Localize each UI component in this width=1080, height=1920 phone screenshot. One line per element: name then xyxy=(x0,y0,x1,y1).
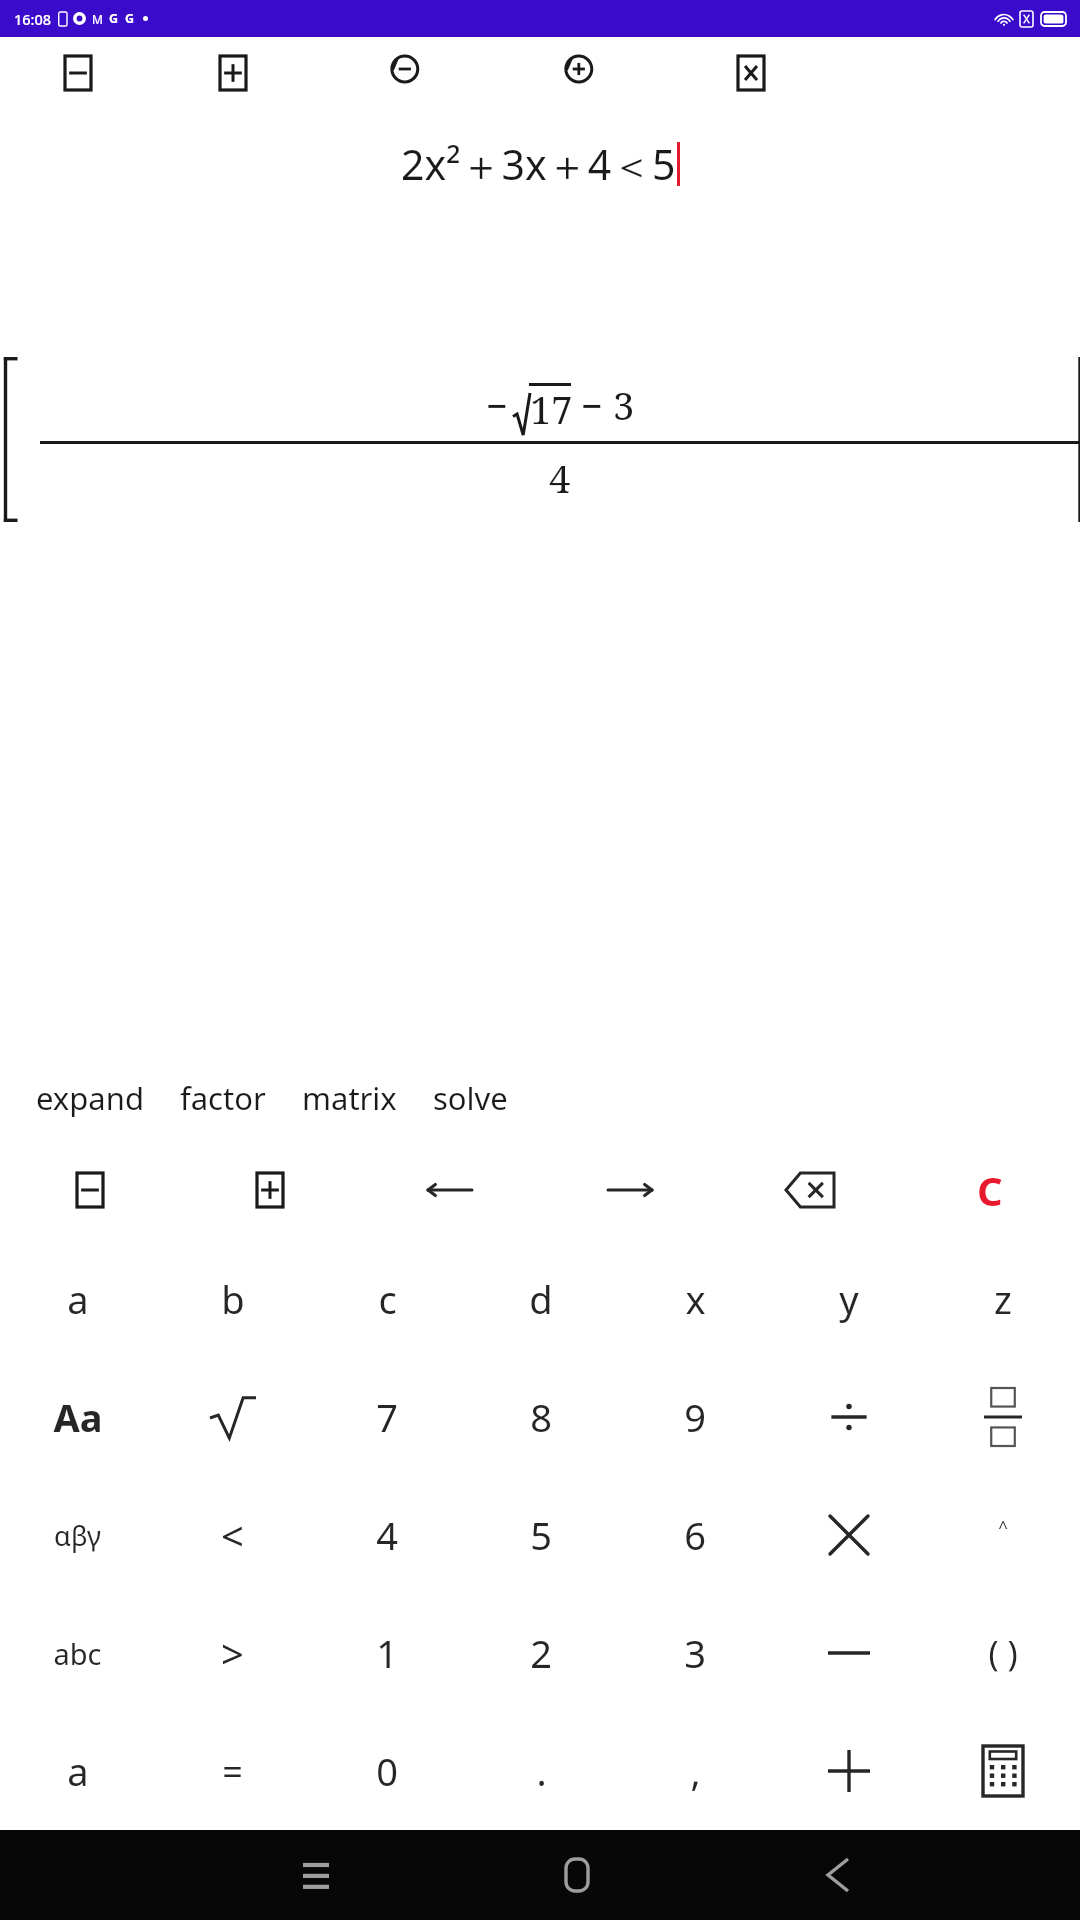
button[interactable]: 3 xyxy=(618,1594,772,1712)
staticText: ( ) xyxy=(988,1630,1018,1676)
button[interactable]: a xyxy=(0,1712,155,1830)
button[interactable]: 5 xyxy=(464,1476,618,1594)
button[interactable]: . xyxy=(464,1712,618,1830)
staticText: 16:08 xyxy=(14,9,52,29)
button[interactable]: d xyxy=(464,1240,618,1358)
staticText: z xyxy=(994,1273,1012,1325)
staticText: d xyxy=(529,1273,553,1325)
button[interactable]: ( ) xyxy=(926,1594,1080,1712)
button[interactable]: Home xyxy=(446,1830,707,1920)
button[interactable]: Minus xyxy=(772,1594,926,1712)
staticText: . xyxy=(536,1745,547,1797)
staticText: solve xyxy=(433,1077,508,1119)
button[interactable]: > xyxy=(155,1594,310,1712)
staticText: αβγ xyxy=(54,1517,101,1554)
button[interactable]: 8 xyxy=(464,1358,618,1476)
button[interactable]: z xyxy=(926,1240,1080,1358)
button[interactable]: 6 xyxy=(618,1476,772,1594)
staticText: = xyxy=(222,1747,243,1796)
staticText: 7 xyxy=(376,1391,398,1443)
button[interactable]: matrix xyxy=(284,1065,415,1131)
staticText: matrix xyxy=(302,1077,397,1119)
button[interactable]: 7 xyxy=(310,1358,464,1476)
staticText: b xyxy=(221,1273,245,1325)
button[interactable]: Square root xyxy=(155,1358,310,1476)
button[interactable]: b xyxy=(155,1240,310,1358)
button[interactable]: solve xyxy=(415,1065,526,1131)
button[interactable]: Divide xyxy=(772,1358,926,1476)
button[interactable]: Zoom in xyxy=(495,37,658,109)
staticText: 3 xyxy=(684,1627,706,1679)
staticText: 2 xyxy=(530,1627,552,1679)
staticText: 1 xyxy=(376,1627,398,1679)
button[interactable]: = xyxy=(155,1712,310,1830)
button[interactable]: Collapse xyxy=(0,37,155,109)
button[interactable]: Expand xyxy=(180,1140,360,1240)
staticText: c xyxy=(378,1273,397,1325)
button[interactable]: Calculator xyxy=(926,1712,1080,1830)
staticText: 0 xyxy=(376,1745,398,1797)
button[interactable]: Recents xyxy=(185,1830,446,1920)
button[interactable]: Fraction xyxy=(926,1358,1080,1476)
staticText: 5 xyxy=(530,1509,552,1561)
staticText: abc xyxy=(53,1634,102,1673)
staticText: , xyxy=(690,1745,701,1797)
button[interactable]: 9 xyxy=(618,1358,772,1476)
staticText: M xyxy=(92,11,103,27)
staticText: 4 xyxy=(376,1509,398,1561)
button[interactable]: 0 xyxy=(310,1712,464,1830)
button[interactable]: , xyxy=(618,1712,772,1830)
staticText: 4 xyxy=(549,452,571,504)
button[interactable]: Backspace xyxy=(720,1140,900,1240)
button[interactable]: x xyxy=(618,1240,772,1358)
staticText: a xyxy=(67,1745,89,1797)
staticText: ˄ xyxy=(998,1512,1008,1558)
button[interactable]: 4 xyxy=(310,1476,464,1594)
button[interactable]: Aa xyxy=(0,1358,155,1476)
staticText: factor xyxy=(180,1077,266,1119)
staticText: a xyxy=(67,1273,89,1325)
button[interactable]: Expand xyxy=(155,37,310,109)
staticText: Aa xyxy=(53,1391,103,1443)
button[interactable]: a xyxy=(0,1240,155,1358)
staticText: < xyxy=(221,1508,244,1562)
button[interactable]: factor xyxy=(162,1065,284,1131)
staticText: 8 xyxy=(530,1391,552,1443)
staticText: 2x²＋3x＋4＜5 xyxy=(401,136,676,192)
button[interactable]: ˄ xyxy=(926,1476,1080,1594)
button[interactable]: 1 xyxy=(310,1594,464,1712)
button[interactable]: αβγ xyxy=(0,1476,155,1594)
staticText: y xyxy=(839,1273,859,1325)
button[interactable]: 2x²＋3x＋4＜5 xyxy=(0,109,1080,219)
staticText: x xyxy=(685,1273,706,1325)
button[interactable]: abc xyxy=(0,1594,155,1712)
button[interactable]: c xyxy=(310,1240,464,1358)
button[interactable]: Plus xyxy=(772,1712,926,1830)
staticText: G xyxy=(125,10,135,27)
staticText: > xyxy=(221,1626,244,1680)
staticText: − xyxy=(486,379,509,431)
staticText: expand xyxy=(36,1077,144,1119)
staticText: C xyxy=(977,1163,1003,1217)
button[interactable]: Close xyxy=(658,37,843,109)
button[interactable]: < xyxy=(155,1476,310,1594)
button[interactable]: Move left xyxy=(360,1140,540,1240)
button[interactable]: Collapse xyxy=(0,1140,180,1240)
button[interactable]: y xyxy=(772,1240,926,1358)
button[interactable]: C xyxy=(900,1140,1080,1240)
button[interactable]: Move right xyxy=(540,1140,720,1240)
button[interactable]: expand xyxy=(18,1065,162,1131)
button[interactable]: Back xyxy=(707,1830,968,1920)
staticText: 6 xyxy=(684,1509,706,1561)
button[interactable]: Multiply xyxy=(772,1476,926,1594)
button[interactable]: Zoom out xyxy=(310,37,495,109)
staticText: 17 xyxy=(530,383,573,435)
staticText: − 3 xyxy=(581,379,635,431)
button[interactable]: 2 xyxy=(464,1594,618,1712)
staticText: G xyxy=(109,10,119,27)
staticText: 9 xyxy=(684,1391,706,1443)
